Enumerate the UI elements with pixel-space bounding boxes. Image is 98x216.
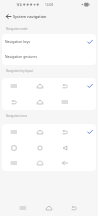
staticText: 14:08 <box>45 3 54 7</box>
staticText: Navigation key layout <box>6 69 34 73</box>
button[interactable] <box>2 78 96 94</box>
button[interactable] <box>2 124 96 140</box>
staticText: Navigation gestures <box>5 54 37 59</box>
staticText: Navigation keys <box>5 39 31 44</box>
button[interactable]: Navigation gestures <box>2 49 96 64</box>
button[interactable] <box>2 94 96 110</box>
staticText: System navigation <box>13 14 47 19</box>
button[interactable]: Back <box>2 10 14 22</box>
button[interactable]: Home <box>41 200 57 216</box>
button[interactable] <box>2 140 96 156</box>
button[interactable]: Back <box>66 200 82 216</box>
staticText: Navigation icons <box>6 114 27 118</box>
button[interactable]: Navigation keys <box>2 34 96 49</box>
button[interactable] <box>2 155 96 171</box>
button[interactable]: Recents <box>15 200 31 216</box>
staticText: Navigation mode <box>6 27 28 31</box>
